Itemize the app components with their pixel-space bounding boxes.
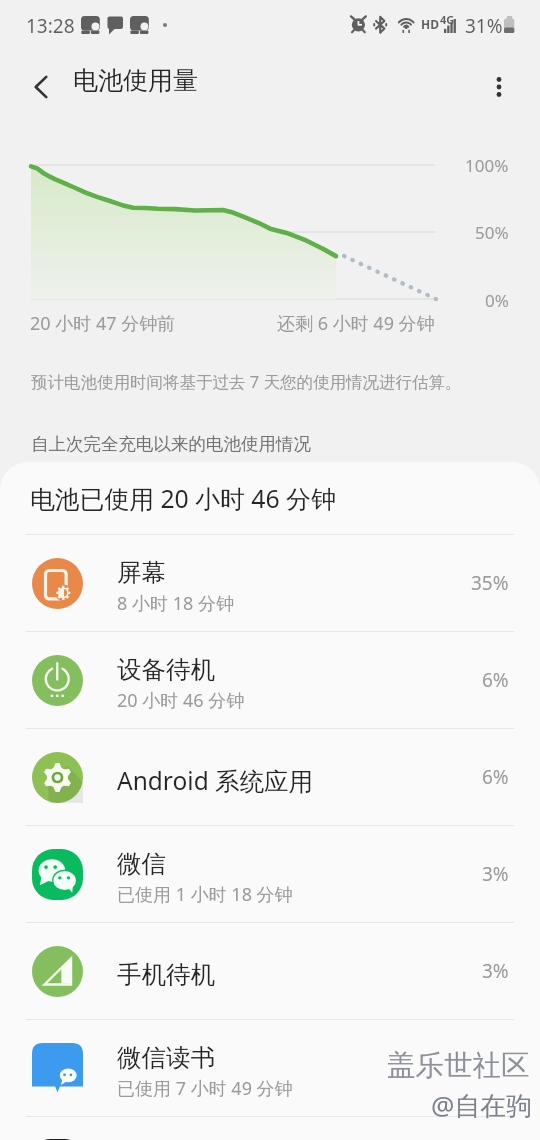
staticText: 设备待机 (117, 654, 215, 685)
button[interactable]: 微信 (0, 826, 540, 922)
staticText: 自上次完全充电以来的电池使用情况 (31, 433, 311, 455)
button[interactable]: Back (14, 60, 68, 114)
staticText: 3% (482, 958, 509, 984)
staticText: 预计电池使用时间将基于过去 7 天您的使用情况进行估算。 (31, 370, 462, 393)
staticText: 0% (485, 289, 509, 312)
staticText: 4G (440, 12, 455, 27)
staticText: 13:28 (26, 13, 75, 39)
staticText: @自在驹 (431, 1087, 533, 1123)
staticText: 微信 (117, 848, 166, 879)
button[interactable]: More options (472, 60, 526, 114)
staticText: 6% (482, 764, 509, 790)
staticText: 电池使用量 (73, 65, 198, 96)
button[interactable]: 微信读书 (0, 1020, 540, 1116)
button[interactable]: 设备待机 (0, 632, 540, 728)
staticText: 8 小时 18 分钟 (117, 591, 234, 616)
staticText: 屏幕 (117, 557, 166, 588)
staticText: Android 系统应用 (117, 764, 314, 797)
staticText: 还剩 6 小时 49 分钟 (277, 311, 435, 336)
staticText: 20 小时 46 分钟 (117, 688, 245, 713)
staticText: 35% (471, 570, 509, 596)
staticText: 电池已使用 20 小时 46 分钟 (30, 481, 336, 515)
staticText: 20 小时 47 分钟前 (30, 311, 176, 336)
staticText: 31% (465, 13, 503, 39)
staticText: 50% (475, 221, 509, 244)
staticText: HD (421, 16, 439, 32)
staticText: 已使用 7 小时 49 分钟 (117, 1076, 293, 1101)
staticText: 3% (482, 861, 509, 887)
staticText: 微信读书 (117, 1042, 215, 1073)
staticText: 100% (465, 154, 509, 177)
staticText: 已使用 1 小时 18 分钟 (117, 882, 293, 907)
staticText: 盖乐世社区 (387, 1048, 530, 1084)
button[interactable] (0, 1117, 540, 1140)
staticText: 手机待机 (117, 959, 215, 990)
button[interactable]: 手机待机 (0, 923, 540, 1019)
staticText: 6% (482, 667, 509, 693)
button[interactable]: 屏幕 (0, 535, 540, 631)
button[interactable]: Android 系统应用 (0, 729, 540, 825)
